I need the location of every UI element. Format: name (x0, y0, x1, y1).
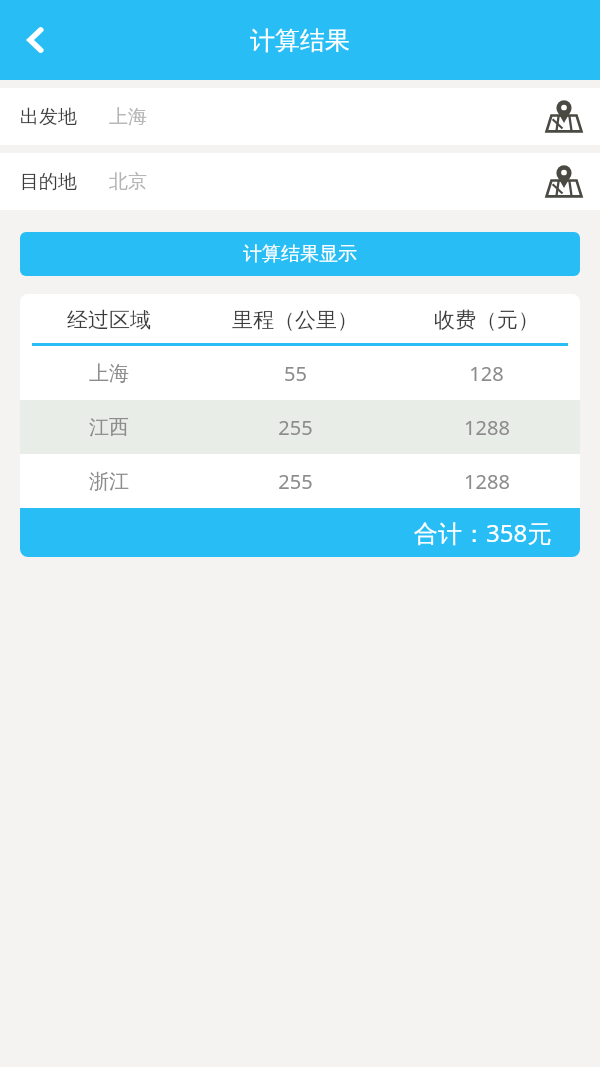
staticText: 出发地 (20, 105, 77, 129)
staticText: 经过区域 (67, 307, 151, 333)
button[interactable]: Back (8, 12, 64, 68)
button[interactable]: Choose origin on map (538, 91, 590, 143)
staticText: 江西 (89, 415, 129, 440)
staticText: 北京 (109, 170, 147, 194)
staticText: 128 (469, 360, 504, 387)
staticText: 255 (278, 414, 313, 441)
staticText: 里程（公里） (232, 307, 358, 333)
button[interactable]: 江西 (20, 400, 580, 454)
staticText: 1288 (464, 414, 510, 441)
button[interactable]: 目的地 (0, 153, 600, 210)
staticText: 计算结果 (250, 25, 350, 56)
staticText: 合计：358元 (414, 516, 552, 549)
staticText: 浙江 (89, 469, 129, 494)
button[interactable]: 上海 (20, 346, 580, 400)
button[interactable]: Choose destination on map (538, 156, 590, 208)
button[interactable]: 出发地 (0, 88, 600, 145)
staticText: 255 (278, 468, 313, 495)
staticText: 收费（元） (434, 307, 539, 333)
staticText: 计算结果显示 (243, 242, 357, 266)
staticText: 55 (284, 360, 307, 387)
staticText: 目的地 (20, 170, 77, 194)
button[interactable]: 浙江 (20, 454, 580, 508)
button[interactable]: 计算结果显示 (20, 232, 580, 276)
staticText: 1288 (464, 468, 510, 495)
staticText: 上海 (109, 105, 147, 129)
staticText: 上海 (89, 361, 129, 386)
